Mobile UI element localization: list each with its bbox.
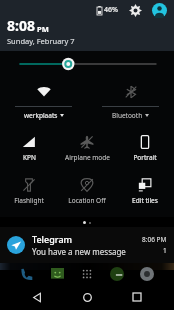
button[interactable]: Back	[24, 284, 50, 310]
staticText: 8:06 PM	[142, 235, 167, 244]
button[interactable]: Edit tiles	[116, 170, 174, 213]
button[interactable]: Recent apps	[124, 284, 150, 310]
staticText: Bluetooth	[112, 111, 143, 120]
staticText: You have a new message	[32, 246, 126, 257]
button[interactable]: Bluetooth	[87, 77, 174, 123]
button[interactable]: Airplane mode	[58, 127, 116, 170]
button[interactable]: Settings	[126, 1, 144, 19]
button[interactable]: Mobile data	[0, 127, 58, 170]
button[interactable]: Chrome	[138, 265, 156, 283]
staticText: PM	[37, 24, 49, 34]
staticText: Flashlight	[14, 196, 44, 205]
staticText: Sunday, February 7	[7, 36, 75, 46]
staticText: Edit tiles	[132, 196, 158, 205]
button[interactable]: Location	[58, 170, 116, 213]
button[interactable]: Brightness	[0, 51, 174, 77]
staticText: 8:08	[7, 16, 35, 35]
button[interactable]: Auto rotate	[116, 127, 174, 170]
button[interactable]: User account	[150, 1, 168, 19]
staticText: 46%	[104, 5, 118, 15]
staticText: Location Off	[68, 196, 106, 205]
button[interactable]: Flashlight	[0, 170, 58, 213]
button[interactable]: Home	[74, 284, 100, 310]
staticText: 1	[163, 246, 167, 255]
staticText: Airplane mode	[65, 153, 110, 162]
button[interactable]: Wi-Fi	[0, 77, 87, 123]
staticText: werkplaats	[24, 111, 58, 120]
staticText: Telegram	[32, 233, 73, 245]
button[interactable]: All apps	[78, 265, 96, 283]
button[interactable]: Telegram	[0, 227, 174, 263]
staticText: Portrait	[133, 153, 157, 162]
button[interactable]: Messages	[48, 265, 66, 283]
button[interactable]: Phone	[18, 265, 36, 283]
staticText: KPN	[23, 153, 36, 162]
button[interactable]: Camera	[108, 265, 126, 283]
